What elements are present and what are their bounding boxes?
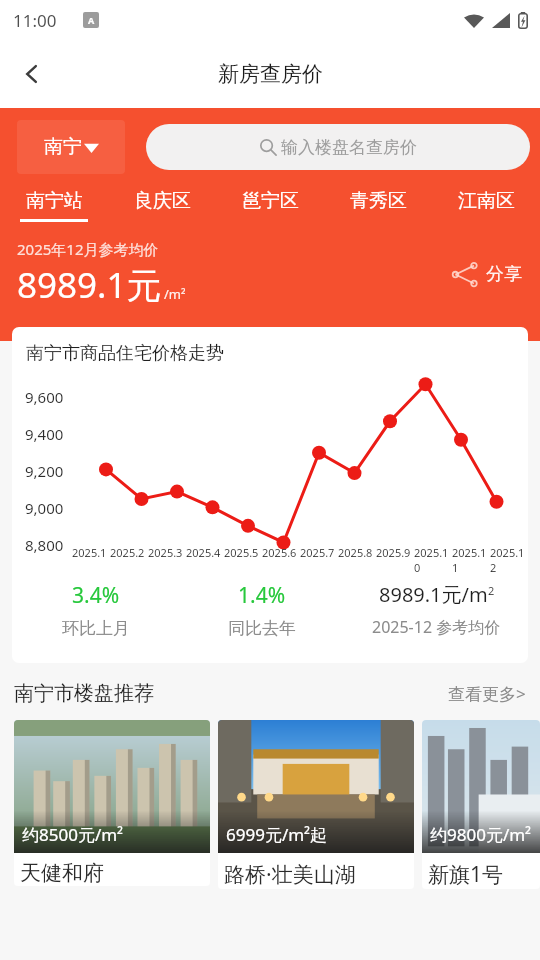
- staticText: 2025.8: [338, 545, 373, 560]
- staticText: 天健和府: [20, 860, 104, 886]
- staticText: 南宁: [44, 135, 82, 159]
- staticText: 2025.3: [148, 545, 183, 560]
- staticText: 9,000: [25, 498, 64, 518]
- staticText: 查看更多>: [448, 682, 526, 705]
- button[interactable]: 青秀区: [324, 189, 432, 222]
- button[interactable]: 南宁: [17, 120, 125, 174]
- button[interactable]: 6999元/m²起: [218, 720, 414, 889]
- staticText: 2025.4: [186, 545, 221, 560]
- staticText: 2025-12 参考均价: [372, 616, 501, 638]
- staticText: 11:00: [13, 9, 57, 32]
- button[interactable]: 约8500元/m²: [14, 720, 210, 886]
- staticText: 青秀区: [350, 189, 407, 213]
- staticText: 6999元/m²起: [226, 823, 328, 846]
- staticText: /m²: [164, 285, 186, 303]
- button[interactable]: Back: [8, 50, 56, 98]
- staticText: 邕宁区: [242, 189, 299, 213]
- staticText: 约9800元/m²: [430, 823, 532, 846]
- staticText: 南宁站: [26, 189, 83, 213]
- button[interactable]: 邕宁区: [216, 189, 324, 222]
- button[interactable]: 良庆区: [108, 189, 216, 222]
- staticText: 江南区: [458, 189, 515, 213]
- button[interactable]: 查看更多>: [448, 682, 526, 705]
- staticText: 8989.1元/m: [379, 581, 488, 608]
- staticText: 环比上月: [62, 618, 130, 639]
- staticText: 2025.11: [452, 545, 490, 575]
- staticText: 9,600: [25, 387, 64, 407]
- staticText: 1.4%: [238, 581, 286, 610]
- staticText: 2025.1: [72, 545, 107, 560]
- staticText: 3.4%: [72, 581, 120, 610]
- staticText: 2025.2: [110, 545, 145, 560]
- staticText: 约8500元/m²: [22, 823, 124, 846]
- staticText: 新旗1号: [428, 860, 504, 889]
- staticText: 2025年12月参考均价: [17, 239, 159, 259]
- staticText: 良庆区: [134, 189, 191, 213]
- staticText: 路桥·壮美山湖: [224, 860, 356, 889]
- button[interactable]: 分享: [451, 260, 522, 288]
- staticText: 9,400: [25, 424, 64, 444]
- button[interactable]: 输入楼盘名查房价: [146, 124, 530, 170]
- staticText: 2: [488, 583, 495, 598]
- staticText: 南宁市楼盘推荐: [14, 681, 448, 706]
- staticText: 2025.12: [490, 545, 528, 575]
- staticText: 8,800: [25, 535, 64, 555]
- staticText: 2025.5: [224, 545, 259, 560]
- staticText: 分享: [486, 263, 522, 286]
- button[interactable]: 南宁站: [0, 189, 108, 222]
- staticText: A: [88, 14, 95, 26]
- staticText: 2025.10: [414, 545, 452, 575]
- staticText: 南宁市商品住宅价格走势: [26, 342, 224, 365]
- staticText: 新房查房价: [218, 61, 323, 87]
- staticText: 8989.1元: [17, 261, 162, 309]
- staticText: 2025.9: [376, 545, 411, 560]
- staticText: 同比去年: [228, 618, 296, 639]
- staticText: 2025.6: [262, 545, 297, 560]
- staticText: 9,200: [25, 461, 64, 481]
- staticText: 2025.7: [300, 545, 335, 560]
- button[interactable]: 江南区: [432, 189, 540, 222]
- button[interactable]: 约9800元/m²: [422, 720, 540, 889]
- staticText: 输入楼盘名查房价: [281, 137, 417, 158]
